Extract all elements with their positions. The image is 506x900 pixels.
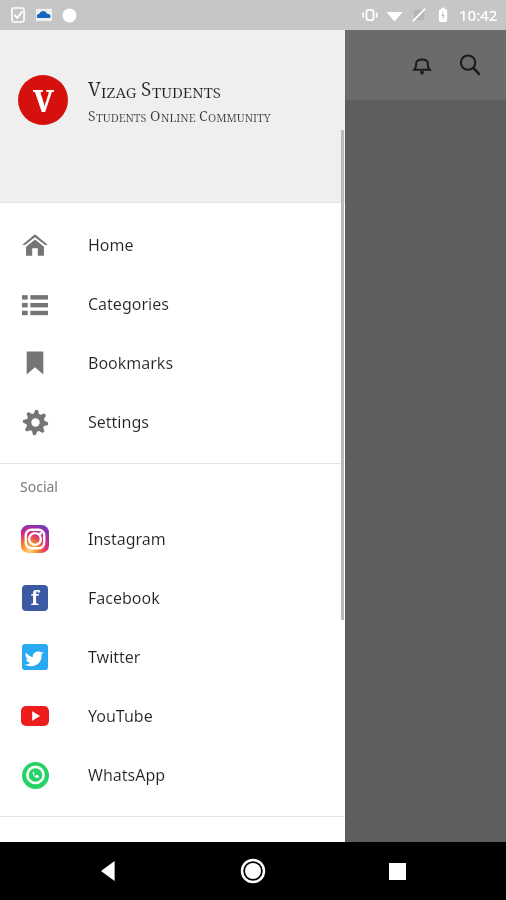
staticText: Instagram [88, 528, 166, 550]
button[interactable]: Home [0, 215, 345, 274]
button[interactable]: YouTube [0, 686, 345, 745]
button[interactable]: Back [85, 847, 133, 895]
staticText: V [88, 76, 101, 102]
staticText: IZAG [101, 82, 141, 102]
staticText: Twitter [88, 646, 141, 668]
staticText: S [88, 106, 96, 125]
button[interactable]: Instagram [0, 509, 345, 568]
staticText: Social [20, 477, 58, 496]
staticText: Facebook [88, 587, 160, 609]
button[interactable]: V [0, 30, 345, 202]
button[interactable]: Settings [0, 392, 345, 451]
staticText: f [31, 585, 39, 611]
staticText: C [199, 106, 208, 125]
staticText: V [33, 80, 54, 121]
staticText: Categories [88, 293, 169, 315]
button[interactable]: Recents [373, 847, 421, 895]
button[interactable]: f [0, 568, 345, 627]
staticText: NLINE [161, 110, 199, 125]
button[interactable]: Twitter [0, 627, 345, 686]
staticText: 10:42 [459, 5, 498, 25]
staticText: S [141, 76, 152, 102]
button[interactable]: Categories [0, 274, 345, 333]
button[interactable]: Search [446, 41, 494, 89]
staticText: Bookmarks [88, 352, 174, 374]
staticText: TUDENTS [152, 82, 222, 102]
staticText: YouTube [88, 705, 153, 727]
staticText: Settings [88, 411, 149, 433]
staticText: O [150, 106, 161, 125]
button[interactable]: Bookmarks [0, 333, 345, 392]
button[interactable]: Home [229, 847, 277, 895]
button[interactable]: WhatsApp [0, 745, 345, 804]
staticText: WhatsApp [88, 764, 166, 786]
staticText: Home [88, 234, 134, 256]
button[interactable]: Notifications [398, 41, 446, 89]
staticText: TUDENTS [96, 110, 150, 125]
staticText: OMMUNITY [208, 110, 271, 125]
